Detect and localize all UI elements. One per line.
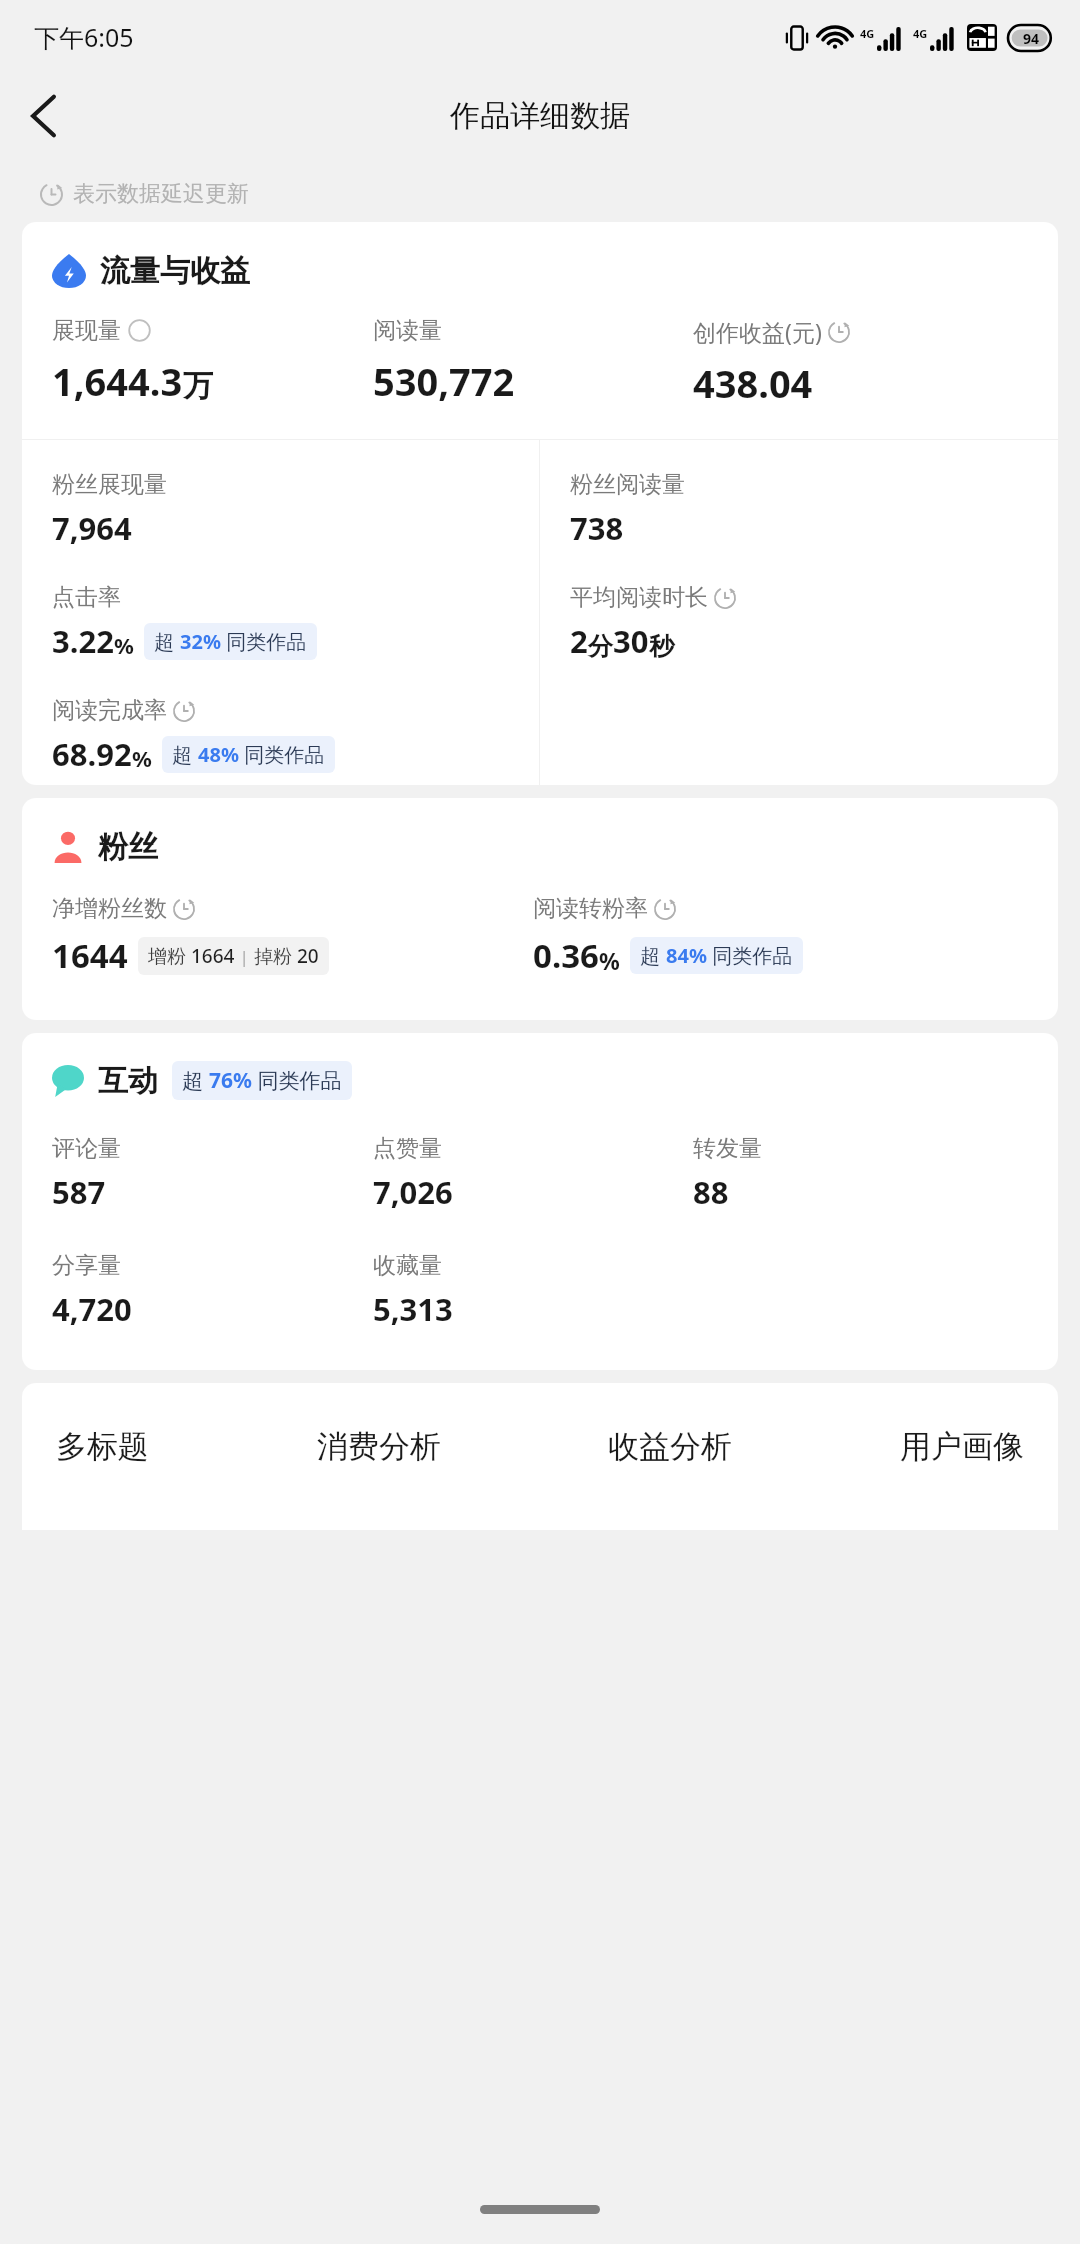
staticText: 阅读转粉率: [533, 894, 648, 923]
staticText: %: [599, 945, 620, 976]
staticText: 88: [693, 1171, 729, 1213]
staticText: 4G: [913, 26, 928, 41]
staticText: 阅读量: [373, 316, 442, 345]
button[interactable]: 消费分析: [313, 1423, 445, 1470]
staticText: 4,720: [52, 1288, 132, 1330]
staticText: 消费分析: [317, 1427, 441, 1466]
staticText: 2: [570, 620, 588, 662]
staticText: 净增粉丝数: [52, 894, 167, 923]
staticText: 48%: [198, 741, 239, 768]
staticText: 掉粉: [254, 943, 297, 969]
staticText: 3.22: [52, 620, 114, 662]
staticText: 1,644.3: [52, 355, 183, 407]
staticText: 438.04: [693, 357, 813, 409]
staticText: 多标题: [56, 1427, 149, 1466]
staticText: 粉丝阅读量: [570, 470, 685, 499]
staticText: 超: [640, 942, 666, 969]
staticText: 同类作品: [252, 1066, 342, 1095]
staticText: 点赞量: [373, 1134, 442, 1163]
staticText: 秒: [649, 631, 674, 662]
staticText: %: [132, 743, 152, 773]
staticText: 30: [613, 620, 649, 662]
staticText: 587: [52, 1171, 106, 1213]
staticText: 5,313: [373, 1288, 453, 1330]
staticText: 738: [570, 507, 624, 549]
staticText: %: [114, 630, 134, 660]
staticText: 同类作品: [239, 741, 325, 768]
staticText: 粉丝展现量: [52, 470, 167, 499]
staticText: 增粉: [148, 943, 191, 969]
staticText: 作品详细数据: [450, 97, 630, 135]
staticText: 收藏量: [373, 1251, 442, 1280]
staticText: 用户画像: [900, 1427, 1024, 1466]
staticText: 平均阅读时长: [570, 583, 708, 612]
button[interactable]: 收益分析: [604, 1423, 736, 1470]
staticText: 76%: [209, 1066, 252, 1095]
staticText: 同类作品: [707, 942, 793, 969]
staticText: 530,772: [373, 355, 515, 407]
staticText: 7,964: [52, 507, 132, 549]
staticText: 94: [1023, 29, 1040, 48]
button[interactable]: 多标题: [52, 1423, 153, 1470]
staticText: 32%: [180, 628, 221, 655]
staticText: 0.36: [533, 933, 599, 978]
staticText: 同类作品: [221, 628, 307, 655]
staticText: 万: [183, 367, 213, 405]
staticText: 下午6:05: [34, 20, 134, 54]
staticText: 点击率: [52, 583, 121, 612]
staticText: |: [235, 945, 254, 968]
staticText: 7,026: [373, 1171, 453, 1213]
staticText: 超: [182, 1066, 209, 1095]
staticText: 1664: [191, 943, 235, 969]
staticText: 超: [154, 628, 180, 655]
staticText: 分享量: [52, 1251, 121, 1280]
button[interactable]: 用户画像: [896, 1423, 1028, 1470]
staticText: 4G: [860, 26, 875, 41]
staticText: 阅读完成率: [52, 696, 167, 725]
staticText: 表示数据延迟更新: [73, 180, 249, 208]
staticText: 评论量: [52, 1134, 121, 1163]
staticText: 20: [297, 943, 319, 969]
staticText: 收益分析: [608, 1427, 732, 1466]
staticText: 超: [172, 741, 198, 768]
staticText: 流量与收益: [100, 252, 250, 290]
staticText: 互动: [98, 1062, 158, 1100]
staticText: 转发量: [693, 1134, 762, 1163]
staticText: 1644: [52, 933, 128, 978]
staticText: 创作收益(元): [693, 316, 822, 347]
staticText: 粉丝: [98, 828, 158, 866]
staticText: 展现量: [52, 316, 121, 345]
staticText: 84%: [666, 942, 707, 969]
button[interactable]: Back: [14, 86, 74, 146]
staticText: 分: [588, 631, 613, 662]
staticText: 68.92: [52, 733, 132, 775]
